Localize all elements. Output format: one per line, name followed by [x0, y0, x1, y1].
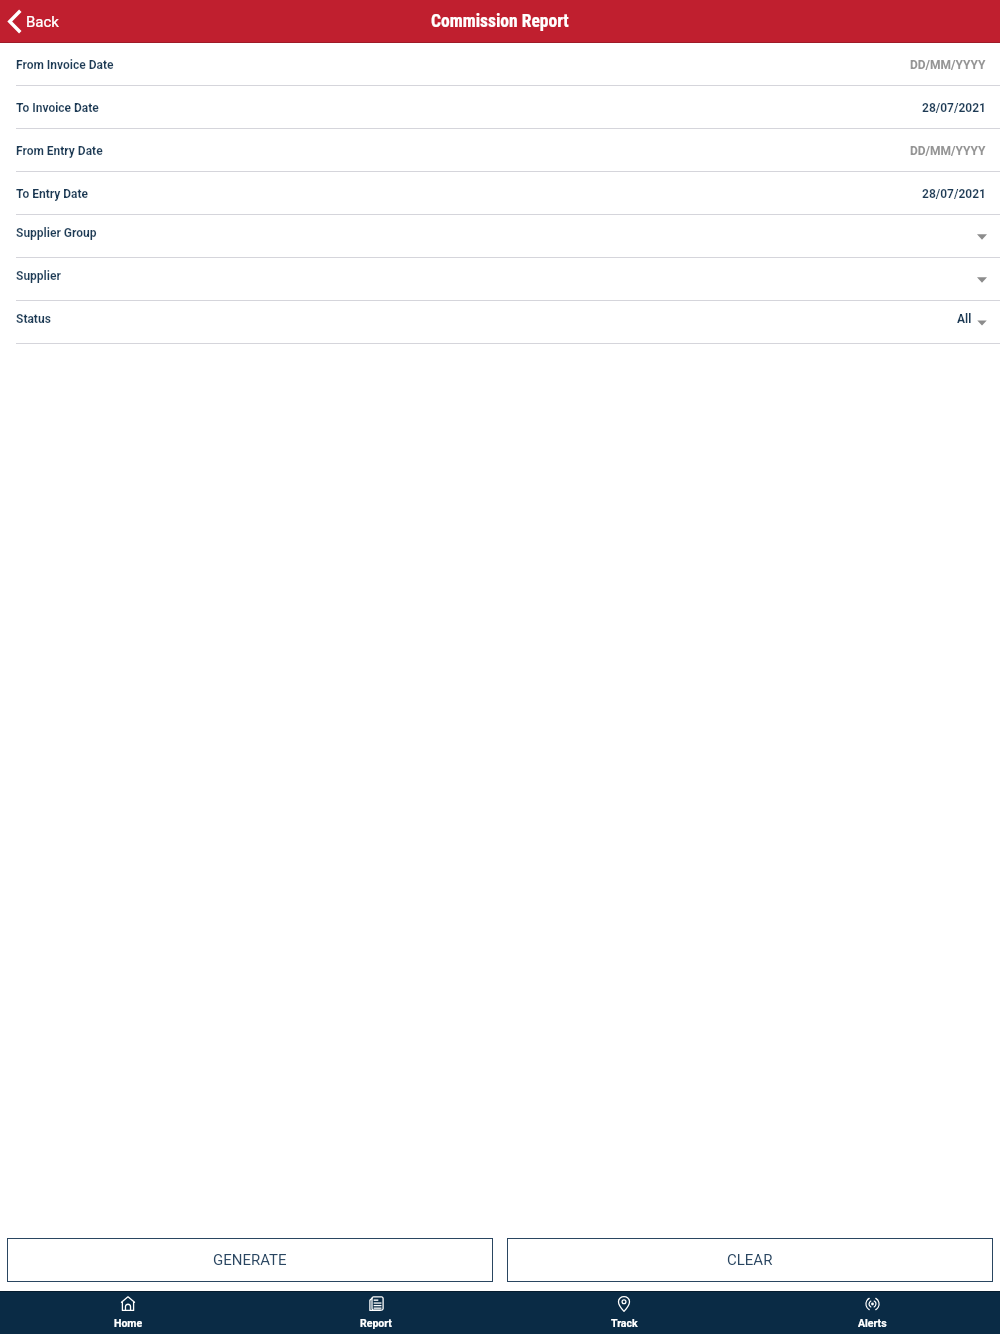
- staticText: Back: [26, 13, 59, 31]
- button[interactable]: To Entry Date: [0, 172, 1000, 215]
- button[interactable]: GENERATE: [7, 1238, 493, 1282]
- staticText: Alerts: [858, 1317, 887, 1329]
- button[interactable]: From Entry Date: [0, 129, 1000, 172]
- staticText: Status: [16, 312, 51, 326]
- staticText: Report: [360, 1317, 392, 1329]
- staticText: From Entry Date: [16, 144, 103, 158]
- button[interactable]: To Invoice Date: [0, 86, 1000, 129]
- button[interactable]: Status: [0, 301, 1000, 344]
- staticText: Supplier Group: [16, 226, 97, 240]
- staticText: DD/MM/YYYY: [910, 58, 986, 72]
- staticText: GENERATE: [213, 1251, 287, 1269]
- button[interactable]: From Invoice Date: [0, 43, 1000, 86]
- button[interactable]: Alerts: [748, 1291, 996, 1334]
- button[interactable]: CLEAR: [507, 1238, 993, 1282]
- staticText: Track: [611, 1317, 638, 1329]
- staticText: 28/07/2021: [922, 187, 986, 201]
- button[interactable]: Track: [500, 1291, 748, 1334]
- staticText: To Invoice Date: [16, 101, 99, 115]
- staticText: Supplier: [16, 269, 61, 283]
- button[interactable]: Report: [252, 1291, 500, 1334]
- staticText: DD/MM/YYYY: [910, 144, 986, 158]
- staticText: Home: [114, 1317, 143, 1329]
- staticText: To Entry Date: [16, 187, 89, 201]
- staticText: From Invoice Date: [16, 58, 114, 72]
- button[interactable]: Supplier: [0, 258, 1000, 301]
- staticText: CLEAR: [727, 1251, 773, 1269]
- staticText: Commission Report: [431, 11, 569, 32]
- staticText: All: [957, 312, 972, 326]
- staticText: 28/07/2021: [922, 101, 986, 115]
- button[interactable]: Supplier Group: [0, 215, 1000, 258]
- button[interactable]: Home: [4, 1291, 252, 1334]
- button[interactable]: Back: [0, 6, 63, 37]
